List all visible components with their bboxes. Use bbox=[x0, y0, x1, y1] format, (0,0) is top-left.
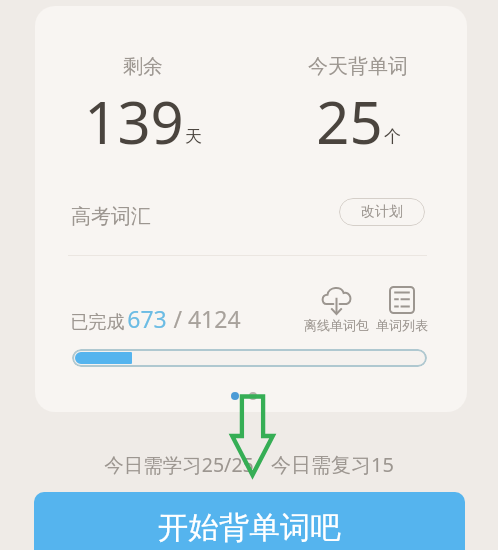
staticText: 天 bbox=[185, 126, 202, 147]
staticText: 已完成 bbox=[68, 309, 127, 334]
staticText: 开始背单词吧 bbox=[158, 509, 341, 547]
button[interactable]: 单词列表 bbox=[376, 286, 428, 333]
staticText: 今日需复习15 bbox=[271, 451, 394, 478]
staticText: 今日需学习25/25 bbox=[104, 451, 254, 478]
staticText: 离线单词包 bbox=[304, 317, 369, 333]
button[interactable]: 离线单词包 bbox=[304, 286, 369, 333]
staticText: 今天背单词 bbox=[308, 54, 408, 79]
staticText: 139 bbox=[84, 82, 184, 161]
button[interactable]: 改计划 bbox=[339, 198, 425, 226]
button[interactable]: 高考词汇 bbox=[71, 204, 151, 229]
staticText: 673 bbox=[127, 303, 167, 334]
staticText: 单词列表 bbox=[376, 317, 428, 333]
staticText: 25 bbox=[316, 82, 383, 161]
staticText: / 4124 bbox=[167, 303, 241, 334]
button[interactable]: 开始背单词吧 bbox=[34, 492, 465, 550]
staticText: 个 bbox=[384, 126, 401, 147]
staticText: 剩余 bbox=[123, 54, 163, 79]
staticText: 高考词汇 bbox=[71, 204, 151, 229]
staticText: 改计划 bbox=[361, 203, 403, 221]
